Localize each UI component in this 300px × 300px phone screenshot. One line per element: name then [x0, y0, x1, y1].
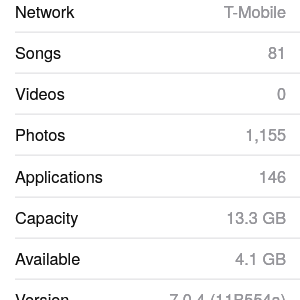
- staticText: Applications: [15, 164, 103, 187]
- staticText: 7.0.4 (11B554a): [169, 287, 286, 300]
- button[interactable]: Photos: [0, 115, 300, 156]
- button[interactable]: Version: [0, 280, 300, 300]
- staticText: 146: [258, 164, 286, 187]
- staticText: Version: [15, 287, 70, 300]
- button[interactable]: Available: [0, 239, 300, 280]
- staticText: 4.1 GB: [235, 246, 286, 269]
- staticText: 7.0.4 (11B554a): [169, 287, 286, 300]
- staticText: 13.3 GB: [226, 205, 286, 228]
- staticText: Capacity: [15, 205, 79, 228]
- staticText: Photos: [15, 122, 66, 145]
- staticText: T-Mobile: [223, 0, 286, 22]
- staticText: 13.3 GB: [226, 205, 286, 228]
- button[interactable]: Videos: [0, 74, 300, 115]
- staticText: 81: [267, 40, 286, 63]
- button[interactable]: Capacity: [0, 198, 300, 239]
- staticText: 1,155: [245, 122, 286, 145]
- staticText: Network: [15, 0, 75, 22]
- staticText: Available: [15, 246, 81, 269]
- staticText: Version: [15, 287, 70, 300]
- staticText: Videos: [15, 81, 65, 104]
- staticText: Capacity: [15, 205, 79, 228]
- button[interactable]: Applications: [0, 157, 300, 198]
- button[interactable]: Network: [0, 0, 300, 33]
- staticText: Photos: [15, 122, 66, 145]
- staticText: 146: [258, 164, 286, 187]
- button[interactable]: Songs: [0, 33, 300, 74]
- staticText: 0: [276, 81, 286, 104]
- staticText: Songs: [15, 40, 62, 63]
- staticText: 0: [276, 81, 286, 104]
- staticText: Network: [15, 0, 75, 22]
- staticText: Videos: [15, 81, 65, 104]
- staticText: 1,155: [245, 122, 286, 145]
- staticText: T-Mobile: [223, 0, 286, 22]
- staticText: 81: [267, 40, 286, 63]
- staticText: Applications: [15, 164, 103, 187]
- staticText: Available: [15, 246, 81, 269]
- staticText: Songs: [15, 40, 62, 63]
- staticText: 4.1 GB: [235, 246, 286, 269]
